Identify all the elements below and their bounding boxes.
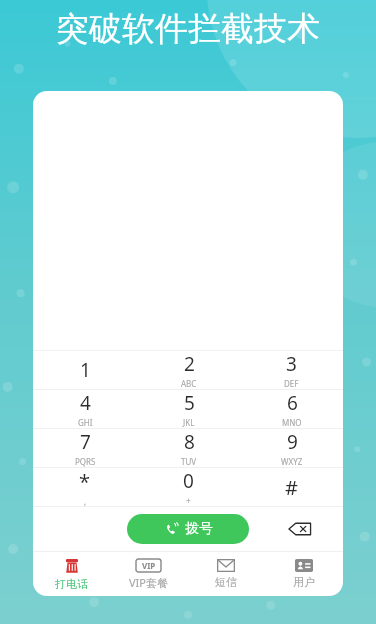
staticText: 6 bbox=[287, 390, 298, 416]
button[interactable]: 3 bbox=[240, 351, 343, 389]
staticText: TUV bbox=[181, 456, 197, 467]
staticText: # bbox=[285, 474, 298, 501]
button[interactable]: 0 bbox=[137, 468, 240, 506]
button[interactable]: 1 bbox=[33, 351, 137, 389]
button[interactable]: * bbox=[33, 468, 137, 506]
button[interactable]: 2 bbox=[137, 351, 240, 389]
staticText: , bbox=[84, 496, 87, 506]
staticText: 短信 bbox=[215, 575, 237, 589]
staticText: VIP bbox=[142, 560, 156, 571]
staticText: 突破软件拦截技术 bbox=[0, 8, 376, 50]
staticText: WXYZ bbox=[281, 456, 303, 467]
button[interactable]: VIP bbox=[110, 552, 187, 596]
button[interactable]: 用户 bbox=[265, 552, 343, 596]
staticText: 1 bbox=[80, 357, 91, 383]
staticText: 9 bbox=[287, 429, 298, 455]
staticText: JKL bbox=[183, 417, 195, 428]
staticText: 8 bbox=[184, 429, 195, 455]
staticText: DEF bbox=[284, 378, 299, 389]
button[interactable]: 5 bbox=[137, 390, 240, 428]
staticText: * bbox=[79, 468, 91, 495]
button[interactable]: 短信 bbox=[187, 552, 265, 596]
staticText: 2 bbox=[184, 351, 195, 377]
staticText: 0 bbox=[183, 468, 194, 494]
button[interactable]: 8 bbox=[137, 429, 240, 467]
staticText: 7 bbox=[80, 429, 91, 455]
button[interactable]: 4 bbox=[33, 390, 137, 428]
button[interactable]: Backspace bbox=[283, 512, 317, 546]
button[interactable]: 6 bbox=[240, 390, 343, 428]
staticText: 打电话 bbox=[55, 577, 88, 591]
staticText: MNO bbox=[282, 417, 302, 428]
staticText: 3 bbox=[286, 351, 297, 377]
staticText: + bbox=[186, 495, 191, 506]
button[interactable]: 打电话 bbox=[33, 552, 110, 596]
staticText: GHI bbox=[78, 417, 93, 428]
button[interactable]: 7 bbox=[33, 429, 137, 467]
staticText: 用户 bbox=[293, 575, 315, 589]
staticText: ABC bbox=[181, 378, 197, 389]
staticText: 4 bbox=[80, 390, 91, 416]
staticText: VIP套餐 bbox=[129, 575, 168, 590]
staticText: PQRS bbox=[75, 456, 96, 467]
staticText: 5 bbox=[184, 390, 195, 416]
button[interactable]: 拨号 bbox=[127, 514, 249, 544]
button[interactable]: # bbox=[240, 468, 343, 506]
staticText: 拨号 bbox=[185, 520, 213, 538]
button[interactable]: 9 bbox=[240, 429, 343, 467]
